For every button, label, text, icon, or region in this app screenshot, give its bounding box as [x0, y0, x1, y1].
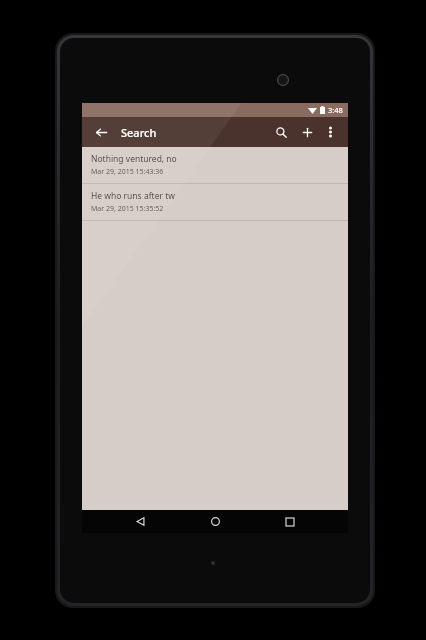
button[interactable]: Back [128, 510, 152, 533]
button[interactable]: Add [296, 121, 318, 143]
staticText: He who runs after tw [91, 190, 175, 202]
button[interactable]: He who runs after tw [82, 184, 348, 220]
button[interactable]: Recent apps [278, 510, 302, 533]
button[interactable]: Search [270, 121, 292, 143]
button[interactable]: More options [320, 122, 340, 142]
staticText: Mar 29, 2015 15:43:36 [91, 167, 164, 177]
staticText: Search [121, 125, 157, 140]
staticText: Nothing ventured, no [91, 153, 177, 165]
staticText: 3:48 [328, 105, 343, 115]
button[interactable]: Home [203, 510, 227, 533]
button[interactable]: Nothing ventured, no [82, 147, 348, 183]
staticText: Mar 29, 2015 15:35:52 [91, 204, 164, 214]
button[interactable]: Back [90, 121, 112, 143]
